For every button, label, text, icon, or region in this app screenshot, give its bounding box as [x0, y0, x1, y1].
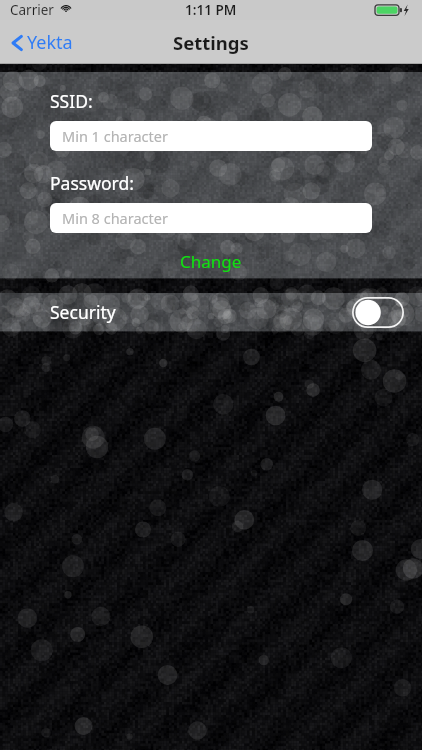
- button[interactable]: Security toggle, off: [352, 297, 404, 328]
- staticText: Password:: [50, 171, 134, 195]
- staticText: Security: [50, 300, 116, 324]
- button[interactable]: Yekta: [6, 26, 77, 59]
- button[interactable]: Change: [50, 250, 372, 273]
- staticText: SSID:: [50, 89, 93, 113]
- staticText: Min 8 character: [62, 208, 168, 228]
- staticText: 1:11 PM: [185, 1, 237, 19]
- button[interactable]: Security: [0, 293, 422, 331]
- staticText: Settings: [173, 30, 249, 55]
- button[interactable]: Min 8 character: [50, 203, 372, 233]
- button[interactable]: Min 1 character: [50, 121, 372, 151]
- staticText: Min 1 character: [62, 126, 168, 146]
- staticText: Change: [180, 250, 242, 273]
- staticText: Carrier: [10, 1, 54, 19]
- staticText: Yekta: [27, 30, 73, 55]
